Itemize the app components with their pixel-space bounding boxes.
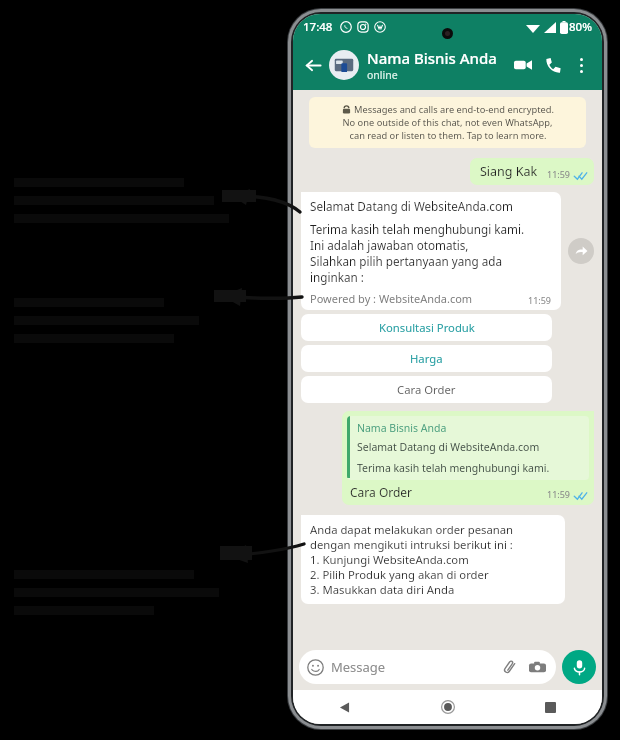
staticText: Nama Bisnis Anda <box>357 421 447 435</box>
button[interactable]: Back <box>299 51 327 79</box>
staticText: Siang Kak <box>480 163 538 180</box>
staticText: online <box>367 68 398 82</box>
button[interactable]: Harga <box>301 345 552 372</box>
button[interactable]: Back <box>293 690 396 724</box>
staticText: Cara Order <box>350 484 413 500</box>
staticText: can read or listen to them. Tap to learn… <box>349 129 547 142</box>
button[interactable]: Siang Kak <box>470 158 594 185</box>
staticText: Message <box>331 658 386 676</box>
staticText: dengan mengikuti intruksi berikut ini : <box>310 537 513 552</box>
button[interactable]: Cara Order <box>301 376 552 403</box>
staticText: 11:59 <box>547 488 571 500</box>
staticText: Ini adalah jawaban otomatis, <box>310 237 469 253</box>
button[interactable]: Nama Bisnis Anda <box>367 48 508 82</box>
staticText: 3. Masukkan data diri Anda <box>310 582 455 597</box>
button[interactable]: Voice call <box>538 50 568 80</box>
staticText: Selamat Datang di WebsiteAnda.com <box>310 198 513 214</box>
staticText: Nama Bisnis Anda <box>367 48 497 68</box>
staticText: inginkan : <box>310 269 364 285</box>
staticText: Silahkan pilih pertanyaan yang ada <box>310 253 502 269</box>
button[interactable]: Voice message <box>562 650 596 684</box>
button[interactable]: Nama Bisnis Anda <box>342 411 594 505</box>
staticText: Powered by : WebsiteAnda.com <box>310 291 473 306</box>
staticText: 11:59 <box>528 294 552 306</box>
staticText: Anda dapat melakukan order pesanan <box>310 522 514 537</box>
button[interactable]: Forward <box>568 238 594 264</box>
staticText: Terima kasih telah menghubungi kami. <box>357 461 550 475</box>
staticText: Messages and calls are end-to-end encryp… <box>354 103 554 116</box>
button[interactable]: Profile photo <box>329 50 359 80</box>
staticText: 1. Kunjungi WebsiteAnda.com <box>310 552 469 567</box>
staticText: 2. Pilih Produk yang akan di order <box>310 567 489 582</box>
staticText: No one outside of this chat, not even Wh… <box>342 116 553 129</box>
staticText: Selamat Datang di WebsiteAnda.com <box>357 440 540 454</box>
button[interactable]: Recent apps <box>499 690 602 724</box>
button[interactable]: Message <box>299 650 556 684</box>
button[interactable]: Home <box>396 690 499 724</box>
staticText: Harga <box>410 351 443 366</box>
staticText: Cara Order <box>397 382 456 397</box>
button[interactable]: Attach <box>499 656 521 678</box>
button[interactable]: Konsultasi Produk <box>301 314 552 341</box>
button[interactable]: Anda dapat melakukan order pesanan <box>301 515 565 604</box>
button[interactable]: Camera <box>526 656 548 678</box>
staticText: 80% <box>569 19 592 35</box>
staticText: Konsultasi Produk <box>379 320 475 335</box>
staticText: 17:48 <box>303 19 333 35</box>
button[interactable]: Video call <box>508 50 538 80</box>
button[interactable]: More options <box>568 52 594 78</box>
button[interactable]: Messages and calls are end-to-end encryp… <box>309 97 586 148</box>
staticText: 11:59 <box>547 168 571 180</box>
staticText: Terima kasih telah menghubungi kami. <box>310 221 525 237</box>
button[interactable]: Selamat Datang di WebsiteAnda.com <box>301 192 561 310</box>
